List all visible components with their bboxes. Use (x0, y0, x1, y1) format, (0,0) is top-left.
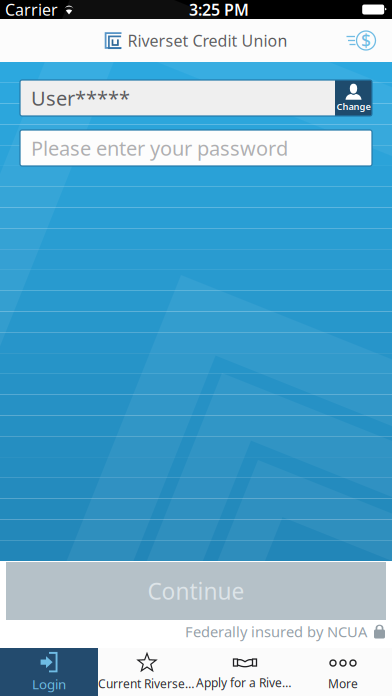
staticText: Carrier (5, 0, 58, 20)
staticText: Continue (147, 576, 244, 606)
button[interactable]: Quick Balance (338, 23, 384, 57)
button[interactable]: More (294, 648, 392, 696)
staticText: Change (336, 100, 370, 113)
button[interactable]: Change user (335, 80, 372, 116)
staticText: Current Riverset® Pr... (98, 675, 196, 691)
button[interactable]: Login (0, 648, 98, 696)
staticText: 3:25 PM (189, 0, 249, 20)
staticText: $ (361, 29, 371, 52)
staticText: More (328, 675, 358, 691)
button[interactable]: Please enter your password (20, 130, 372, 166)
staticText: Please enter your password (31, 135, 288, 161)
button[interactable]: Apply for a Riverset®... (196, 648, 294, 696)
staticText: Riverset Credit Union (127, 30, 287, 51)
button[interactable]: Current Riverset® Pr... (98, 648, 196, 696)
staticText: User***** (31, 85, 130, 111)
button[interactable]: Continue (6, 562, 386, 620)
staticText: Login (32, 675, 66, 693)
staticText: Apply for a Riverset®... (196, 674, 294, 690)
staticText: Federally insured by NCUA (185, 622, 367, 641)
